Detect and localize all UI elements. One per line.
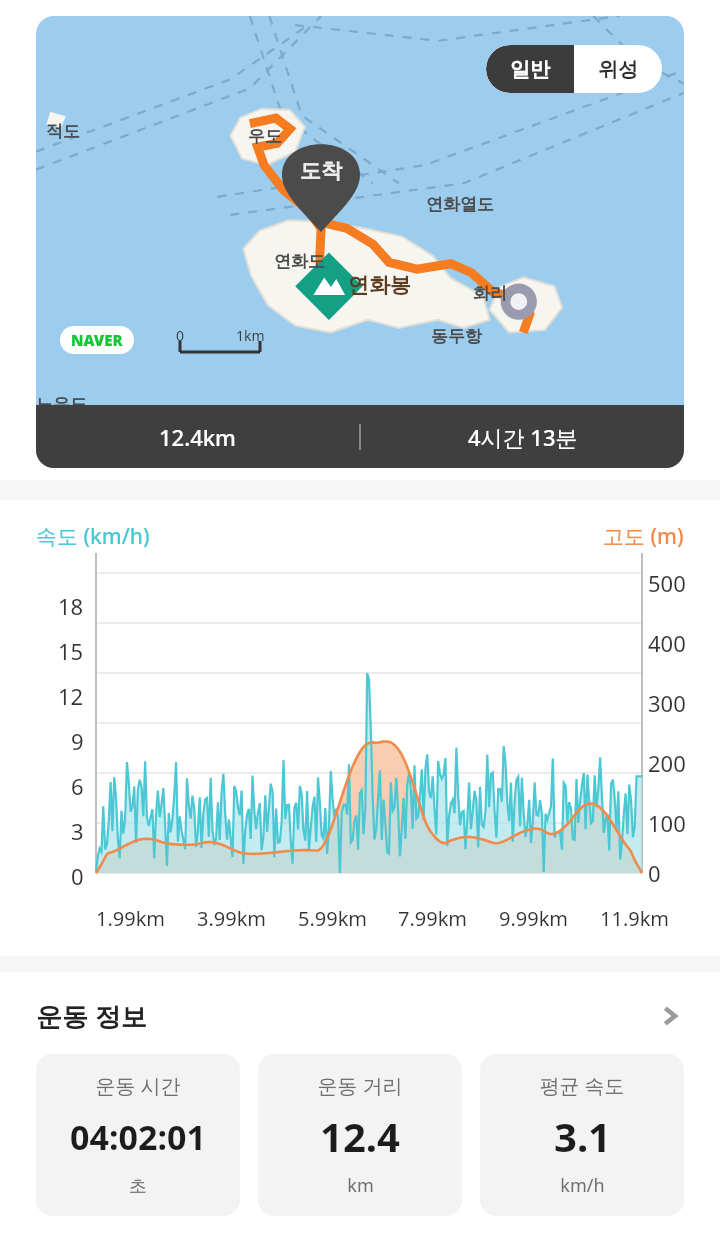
staticText: 3 <box>71 816 84 846</box>
staticText: 0 <box>648 858 661 888</box>
button[interactable]: 운동 거리 <box>258 1054 462 1216</box>
staticText: 400 <box>648 628 686 658</box>
staticText: 12 <box>58 681 84 711</box>
staticText: 운동 거리 <box>317 1072 403 1099</box>
staticText: 04:02:01 <box>70 1114 206 1160</box>
staticText: 연화열도 <box>426 194 494 215</box>
staticText: 300 <box>648 688 686 718</box>
staticText: 6 <box>71 771 84 801</box>
staticText: 동두항 <box>431 326 482 347</box>
button[interactable]: 운동 정보 <box>0 972 720 1054</box>
staticText: 18 <box>58 591 84 621</box>
staticText: NAVER <box>71 330 123 350</box>
staticText: 5.99km <box>298 905 368 932</box>
staticText: 200 <box>648 748 686 778</box>
staticText: km/h <box>560 1173 605 1198</box>
staticText: 3.99km <box>197 905 267 932</box>
staticText: 7.99km <box>398 905 468 932</box>
staticText: 100 <box>648 808 686 838</box>
staticText: 15 <box>58 636 84 666</box>
staticText: 12.4km <box>159 422 236 452</box>
staticText: 도착 <box>300 158 342 184</box>
staticText: 500 <box>648 568 686 598</box>
button[interactable]: 운동 시간 <box>36 1054 240 1216</box>
staticText: 속도 (km/h) <box>36 522 150 551</box>
staticText: km <box>347 1173 374 1198</box>
other: 운동 정보 더보기 <box>656 1002 684 1030</box>
staticText: 11.9km <box>600 905 670 932</box>
button[interactable]: 위성 <box>574 45 662 93</box>
staticText: 9 <box>71 726 84 756</box>
button[interactable]: 평균 속도 <box>480 1054 684 1216</box>
staticText: 적도 <box>46 121 80 142</box>
button[interactable]: 일반 <box>486 45 574 93</box>
staticText: 9.99km <box>499 905 569 932</box>
staticText: 연화도 <box>274 251 325 272</box>
staticText: 노우도 <box>36 394 87 415</box>
staticText: 운동 시간 <box>95 1072 181 1099</box>
staticText: 0 <box>71 861 84 891</box>
staticText: 고도 (m) <box>603 522 684 551</box>
staticText: 위성 <box>598 57 638 82</box>
staticText: 화리 <box>473 283 507 304</box>
staticText: 3.1 <box>554 1109 611 1163</box>
staticText: 평균 속도 <box>539 1072 625 1099</box>
staticText: 1km <box>236 326 265 345</box>
staticText: 연화봉 <box>348 272 411 298</box>
staticText: 12.4 <box>320 1109 400 1163</box>
staticText: 4시간 13분 <box>468 422 578 452</box>
staticText: 일반 <box>510 57 550 82</box>
staticText: 초 <box>129 1175 147 1198</box>
button[interactable]: 적도 <box>36 16 684 468</box>
staticText: 1.99km <box>96 905 166 932</box>
staticText: 0 <box>176 326 185 345</box>
staticText: 운동 정보 <box>36 998 147 1034</box>
staticText: 우도 <box>248 126 282 147</box>
